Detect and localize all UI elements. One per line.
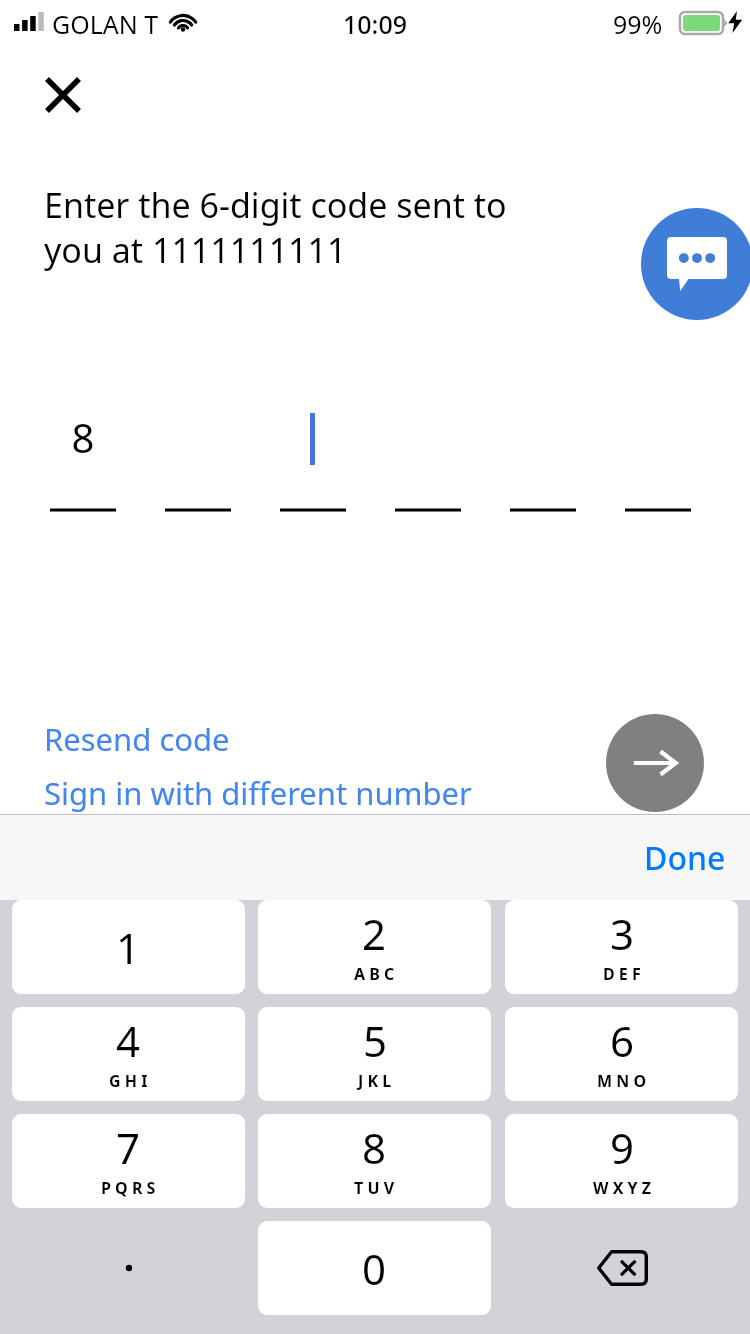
button[interactable]: 5 bbox=[258, 1007, 491, 1101]
button[interactable]: 0 bbox=[258, 1221, 491, 1315]
staticText: 10:09 bbox=[343, 7, 408, 41]
staticText: M N O bbox=[597, 1070, 647, 1092]
button[interactable]: 3 bbox=[505, 900, 738, 994]
button[interactable]: 9 bbox=[505, 1114, 738, 1208]
staticText: 8 bbox=[362, 1119, 387, 1176]
staticText: Sign in with different number bbox=[44, 772, 472, 814]
staticText: P Q R S bbox=[101, 1177, 156, 1199]
button[interactable]: 4 bbox=[12, 1007, 245, 1101]
staticText: 0 bbox=[362, 1240, 387, 1297]
staticText: 9 bbox=[610, 1119, 635, 1176]
button[interactable]: Resend code bbox=[44, 718, 230, 760]
staticText: 1 bbox=[116, 919, 141, 976]
button[interactable]: 7 bbox=[12, 1114, 245, 1208]
button[interactable]: Sign in with different number bbox=[44, 772, 472, 814]
button[interactable]: Done bbox=[620, 824, 750, 892]
staticText: Resend code bbox=[44, 718, 230, 760]
staticText: 6 bbox=[610, 1012, 635, 1069]
staticText: 8 bbox=[50, 410, 116, 464]
staticText: G H I bbox=[109, 1070, 148, 1092]
staticText: A B C bbox=[354, 963, 395, 985]
staticText: D E F bbox=[603, 963, 641, 985]
staticText: 99% bbox=[613, 7, 663, 41]
staticText: 4 bbox=[116, 1012, 141, 1069]
staticText: GOLAN T bbox=[52, 7, 159, 41]
button[interactable]: Period bbox=[12, 1221, 245, 1315]
staticText: W X Y Z bbox=[593, 1177, 651, 1199]
staticText: J K L bbox=[358, 1070, 392, 1092]
staticText: 7 bbox=[116, 1119, 141, 1176]
button[interactable]: Continue bbox=[606, 714, 704, 812]
button[interactable]: 1 bbox=[12, 900, 245, 994]
staticText: 2 bbox=[362, 905, 387, 962]
button[interactable]: 6 bbox=[505, 1007, 738, 1101]
staticText: 3 bbox=[610, 905, 635, 962]
staticText: Enter the 6-digit code sent to you at 11… bbox=[44, 182, 584, 272]
button[interactable]: 2 bbox=[258, 900, 491, 994]
staticText: 5 bbox=[363, 1012, 388, 1069]
button[interactable]: Message bbox=[641, 208, 750, 320]
staticText: Done bbox=[644, 836, 726, 880]
staticText: T U V bbox=[354, 1177, 395, 1199]
button[interactable]: Delete bbox=[505, 1221, 738, 1315]
button[interactable]: 8 bbox=[258, 1114, 491, 1208]
button[interactable]: Close bbox=[28, 60, 98, 130]
